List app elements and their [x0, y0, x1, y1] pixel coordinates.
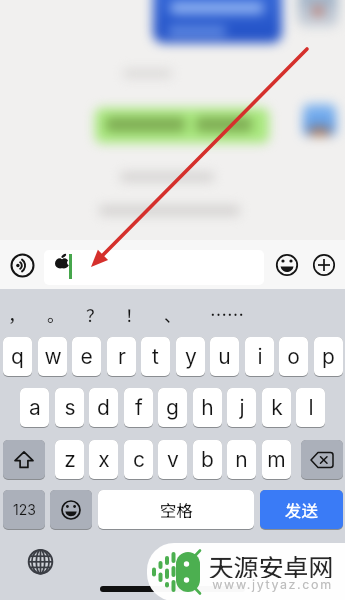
- staticText: h: [201, 395, 214, 420]
- button[interactable]: o: [279, 337, 308, 377]
- button[interactable]: b: [193, 440, 222, 480]
- button[interactable]: c: [124, 440, 153, 480]
- button[interactable]: r: [107, 337, 136, 377]
- button[interactable]: t: [141, 337, 170, 377]
- staticText: r: [118, 344, 126, 369]
- staticText: f: [135, 395, 143, 420]
- staticText: k: [271, 395, 283, 420]
- button[interactable]: y: [176, 337, 205, 377]
- staticText: www.jytyaz.com: [212, 577, 333, 592]
- button[interactable]: d: [89, 388, 118, 428]
- staticText: ，: [8, 302, 25, 327]
- staticText: 。: [47, 302, 64, 327]
- staticText: s: [64, 395, 76, 420]
- staticText: v: [167, 447, 179, 472]
- staticText: q: [11, 344, 24, 369]
- button[interactable]: w: [38, 337, 67, 377]
- staticText: o: [287, 344, 300, 369]
- staticText: b: [201, 447, 214, 472]
- button[interactable]: p: [314, 337, 343, 377]
- button[interactable]: 空格: [98, 490, 254, 530]
- button[interactable]: l: [296, 388, 325, 428]
- button[interactable]: ，: [0, 296, 40, 332]
- button[interactable]: e: [72, 337, 101, 377]
- button[interactable]: ……: [203, 296, 251, 332]
- staticText: ！: [125, 302, 142, 327]
- button[interactable]: [27, 549, 54, 576]
- staticText: g: [166, 395, 179, 420]
- button[interactable]: 。: [31, 296, 79, 332]
- staticText: n: [235, 447, 248, 472]
- staticText: m: [267, 447, 286, 472]
- button[interactable]: m: [262, 440, 291, 480]
- button[interactable]: [276, 254, 298, 276]
- button[interactable]: [313, 254, 335, 276]
- staticText: d: [97, 395, 110, 420]
- staticText: w: [44, 344, 62, 369]
- staticText: p: [322, 344, 335, 369]
- staticText: 、: [164, 302, 181, 327]
- staticText: e: [80, 344, 93, 369]
- button[interactable]: k: [262, 388, 291, 428]
- staticText: j: [239, 395, 245, 420]
- staticText: l: [308, 395, 314, 420]
- button[interactable]: f: [124, 388, 153, 428]
- button[interactable]: n: [227, 440, 256, 480]
- staticText: c: [133, 447, 145, 472]
- staticText: 空格: [160, 498, 193, 522]
- button[interactable]: ？: [70, 296, 118, 332]
- staticText: ？: [86, 302, 103, 327]
- button[interactable]: i: [245, 337, 274, 377]
- button[interactable]: u: [210, 337, 239, 377]
- staticText: a: [29, 395, 41, 420]
- button[interactable]: z: [55, 440, 84, 480]
- button[interactable]: g: [158, 388, 187, 428]
- button[interactable]: [50, 490, 92, 530]
- button[interactable]: 、: [148, 296, 196, 332]
- button[interactable]: [10, 253, 35, 278]
- staticText: 发送: [285, 498, 318, 522]
- button[interactable]: ！: [109, 296, 157, 332]
- staticText: y: [185, 344, 197, 369]
- staticText: i: [257, 344, 263, 369]
- button[interactable]: h: [193, 388, 222, 428]
- staticText: t: [152, 344, 159, 369]
- button[interactable]: [44, 250, 264, 285]
- button[interactable]: v: [158, 440, 187, 480]
- button[interactable]: [301, 440, 343, 480]
- button[interactable]: x: [89, 440, 118, 480]
- staticText: z: [64, 447, 76, 472]
- staticText: u: [218, 344, 231, 369]
- button[interactable]: q: [3, 337, 32, 377]
- button[interactable]: j: [227, 388, 256, 428]
- staticText: x: [98, 447, 110, 472]
- button[interactable]: a: [20, 388, 49, 428]
- button[interactable]: s: [55, 388, 84, 428]
- staticText: 123: [13, 501, 36, 518]
- staticText: ……: [210, 302, 244, 327]
- button[interactable]: 发送: [260, 490, 343, 530]
- button[interactable]: 123: [3, 490, 45, 530]
- button[interactable]: [3, 440, 45, 480]
- staticText: 天源安卓网: [208, 548, 334, 578]
